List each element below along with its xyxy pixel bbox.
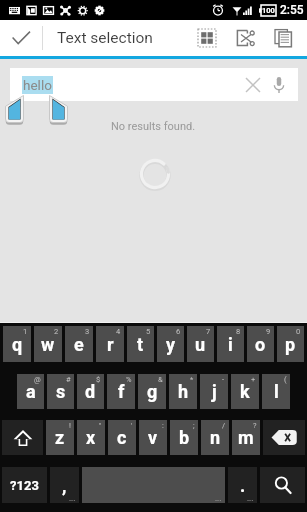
staticText: i <box>228 334 233 355</box>
button[interactable]: shift <box>2 420 43 455</box>
staticText: Text selection <box>57 29 153 47</box>
button[interactable]: Copy <box>264 20 302 56</box>
staticText: $ <box>96 375 101 384</box>
staticText: d <box>85 381 96 402</box>
staticText: 5 <box>146 327 151 336</box>
staticText: q <box>12 334 23 355</box>
button[interactable]: b <box>170 420 198 455</box>
staticText: y <box>166 334 176 355</box>
button[interactable]: Done <box>0 20 42 56</box>
staticText: 8 <box>236 327 241 336</box>
button[interactable]: m <box>232 420 260 455</box>
staticText: l <box>274 381 279 402</box>
button[interactable]: d <box>77 374 104 409</box>
staticText: p <box>285 334 296 355</box>
staticText: / <box>222 421 226 430</box>
staticText: v <box>148 427 158 448</box>
staticText: ... <box>215 494 222 503</box>
staticText: g <box>147 381 158 402</box>
button[interactable]: a <box>17 374 44 409</box>
staticText: j <box>212 381 217 402</box>
staticText: 3 <box>85 327 90 336</box>
button[interactable]: k <box>231 374 259 409</box>
staticText: o <box>255 334 266 355</box>
button[interactable]: c <box>108 420 136 455</box>
button[interactable]: l <box>262 374 290 409</box>
staticText: x <box>86 427 96 448</box>
staticText: + <box>251 375 256 384</box>
staticText: 0 <box>296 327 301 336</box>
staticText: & <box>158 375 163 384</box>
button[interactable]: v <box>139 420 167 455</box>
staticText: z <box>55 427 65 448</box>
button[interactable]: s <box>47 374 74 409</box>
button[interactable]: Clear <box>240 72 266 98</box>
staticText: ; <box>193 421 195 430</box>
button[interactable]: w <box>34 326 62 362</box>
staticText: h <box>178 381 189 402</box>
staticText: : <box>162 421 164 430</box>
staticText: 2:55 <box>280 3 304 17</box>
button[interactable]: u <box>187 326 214 362</box>
button[interactable]: j <box>200 374 228 409</box>
button[interactable]: z <box>46 420 74 455</box>
staticText: t <box>137 334 144 355</box>
button[interactable]: Cut <box>226 20 264 56</box>
button[interactable]: r <box>96 326 124 362</box>
staticText: 1 <box>23 327 28 336</box>
button[interactable]: , <box>50 467 79 503</box>
staticText: ? <box>253 421 257 430</box>
staticText: 7 <box>206 327 211 336</box>
staticText: ! <box>69 421 71 430</box>
button[interactable]: o <box>247 326 274 362</box>
button[interactable]: q <box>3 326 31 362</box>
staticText: u <box>195 334 206 355</box>
staticText: 100 <box>262 6 275 15</box>
button[interactable]: t <box>127 326 154 362</box>
staticText: ' <box>131 421 133 430</box>
staticText: * <box>190 375 194 384</box>
staticText: ?123 <box>10 478 39 493</box>
button[interactable]: e <box>65 326 93 362</box>
button[interactable]: y <box>157 326 184 362</box>
button[interactable]: Select all <box>188 20 226 56</box>
staticText: No results found. <box>111 120 196 133</box>
button[interactable]: search <box>260 467 305 503</box>
staticText: n <box>210 427 221 448</box>
button[interactable]: p <box>277 326 304 362</box>
button[interactable]: . <box>228 467 257 503</box>
button[interactable]: x <box>77 420 105 455</box>
staticText: " <box>99 421 102 430</box>
staticText: ( <box>284 375 287 384</box>
staticText: @ <box>34 375 41 384</box>
button[interactable]: h <box>169 374 197 409</box>
button[interactable]: g <box>138 374 166 409</box>
staticText: w <box>41 334 55 355</box>
staticText: ... <box>69 494 76 503</box>
button[interactable]: i <box>217 326 244 362</box>
staticText: s <box>56 381 66 402</box>
button[interactable]: del <box>263 420 305 455</box>
staticText: b <box>179 427 190 448</box>
staticText: 4 <box>116 327 121 336</box>
staticText: ... <box>247 494 254 503</box>
staticText: m <box>238 427 254 448</box>
staticText: hello <box>23 77 52 93</box>
staticText: , <box>62 475 67 496</box>
staticText: . <box>240 475 246 496</box>
staticText: 2 <box>54 327 59 336</box>
button[interactable]: ?123 <box>2 467 47 503</box>
staticText: % <box>126 375 132 384</box>
staticText: e <box>74 334 84 355</box>
staticText: 6 <box>176 327 181 336</box>
button[interactable]: Voice search <box>266 72 292 98</box>
button[interactable]: f <box>107 374 135 409</box>
button[interactable]: n <box>201 420 229 455</box>
staticText: a <box>26 381 36 402</box>
staticText: c <box>117 427 127 448</box>
staticText: k <box>240 381 250 402</box>
staticText: # <box>66 375 71 384</box>
staticText: f <box>118 381 125 402</box>
staticText: - <box>222 375 225 384</box>
